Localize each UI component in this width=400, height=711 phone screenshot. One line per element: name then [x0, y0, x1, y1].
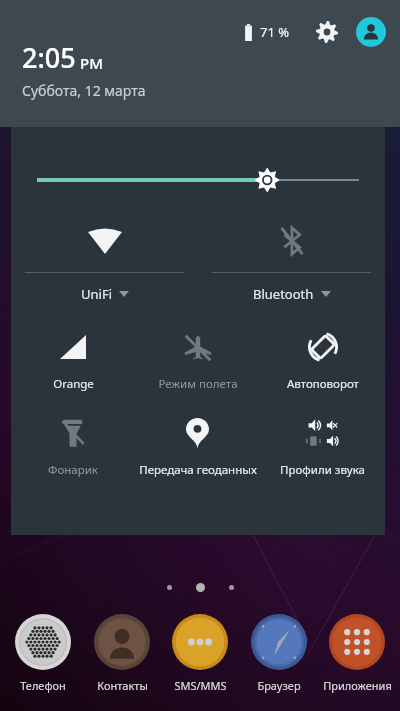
button[interactable]: Brightness	[37, 165, 359, 195]
button[interactable]: Браузер	[242, 614, 316, 693]
button[interactable]: Телефон	[6, 614, 80, 693]
button[interactable]: Режим полета	[138, 328, 257, 392]
staticText: UniFi	[81, 285, 112, 303]
button[interactable]: Профили звука	[263, 414, 382, 478]
staticText: Автоповорот	[287, 376, 359, 392]
staticText: Телефон	[20, 678, 66, 693]
staticText: Профили звука	[280, 462, 365, 478]
button[interactable]: User profile	[356, 17, 386, 47]
button[interactable]: Bluetooth	[212, 221, 371, 303]
button[interactable]: Передача геоданных	[138, 414, 257, 478]
staticText: Приложения	[323, 678, 392, 693]
button[interactable]: Фонарик	[14, 414, 132, 478]
staticText: 2:05	[22, 39, 76, 76]
staticText: Orange	[53, 376, 94, 392]
staticText: Браузер	[257, 678, 301, 693]
staticText: Контакты	[97, 678, 148, 693]
staticText: SMS/MMS	[174, 678, 227, 693]
staticText: Bluetooth	[253, 285, 314, 303]
staticText: Суббота, 12 марта	[22, 81, 146, 100]
button[interactable]: UniFi	[25, 221, 184, 303]
button[interactable]: Orange	[14, 328, 132, 392]
button[interactable]: Контакты	[85, 614, 159, 693]
staticText: PM	[80, 53, 103, 73]
button[interactable]: Settings	[312, 17, 342, 47]
staticText: 71 %	[260, 23, 290, 41]
staticText: Режим полета	[158, 376, 238, 392]
button[interactable]: Приложения	[320, 614, 394, 693]
staticText: Передача геоданных	[139, 462, 257, 478]
button[interactable]: Автоповорот	[263, 328, 382, 392]
staticText: Фонарик	[48, 462, 98, 478]
button[interactable]: SMS/MMS	[163, 614, 237, 693]
